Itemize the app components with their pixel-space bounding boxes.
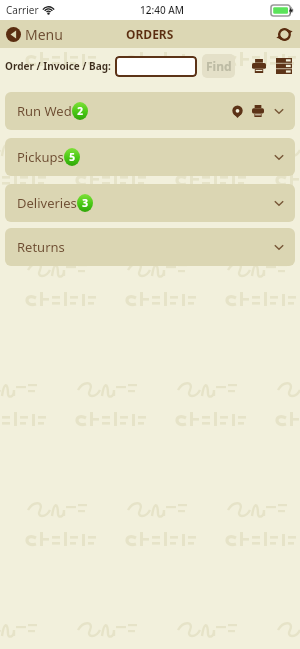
button[interactable]: Receipts list xyxy=(273,55,295,77)
staticText: Deliveries xyxy=(17,194,77,212)
staticText: Returns xyxy=(17,238,65,256)
button[interactable]: Expand Pickups xyxy=(271,149,287,165)
button[interactable]: Map location xyxy=(228,102,246,120)
button[interactable]: Find xyxy=(202,54,235,78)
staticText: ORDERS xyxy=(126,26,174,42)
button[interactable]: Expand Deliveries xyxy=(271,195,287,211)
button[interactable]: Run Wed xyxy=(5,92,295,130)
button[interactable]: Print run xyxy=(249,102,267,120)
staticText: Pickups xyxy=(17,148,64,166)
button[interactable]: Menu xyxy=(6,25,63,44)
staticText: Run Wed xyxy=(17,102,72,120)
button[interactable]: Print xyxy=(249,56,269,76)
staticText: 5 xyxy=(69,150,75,164)
button[interactable]: Pickups xyxy=(5,138,295,176)
staticText: Find xyxy=(206,58,232,74)
staticText: 2 xyxy=(77,104,83,118)
staticText: Order / Invoice / Bag: xyxy=(5,59,111,73)
button[interactable]: Expand Returns xyxy=(271,239,287,255)
button[interactable]: Refresh xyxy=(274,24,294,44)
button[interactable]: Deliveries xyxy=(5,184,295,222)
staticText: 3 xyxy=(82,196,88,210)
button[interactable]: Expand Run Wed xyxy=(271,103,287,119)
staticText: 12:40 AM xyxy=(140,3,184,17)
button[interactable]: Order Invoice Bag input xyxy=(115,56,197,77)
button[interactable]: Returns xyxy=(5,228,295,266)
staticText: Carrier xyxy=(6,3,39,17)
staticText: Menu xyxy=(25,25,63,44)
